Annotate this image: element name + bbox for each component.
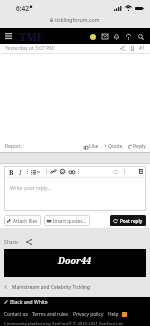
button[interactable]: RSS feed [122,312,127,317]
staticText: Black and White [10,299,48,306]
button[interactable]: I [17,168,24,175]
button[interactable]: Alerts [111,31,122,42]
staticText: I [19,168,22,175]
button[interactable]: Contact us [4,311,28,318]
button[interactable]: Help [108,311,119,318]
button[interactable]: Post reply [110,215,146,226]
staticText: Attach files [13,218,38,224]
staticText: + [104,143,107,150]
button[interactable]: Door44 [4,249,146,277]
staticText: ticklingforum.com [55,16,100,23]
button[interactable]: Your account [87,31,98,42]
staticText: B [9,168,14,175]
button[interactable]: Menu [2,30,14,42]
button[interactable]: + [104,143,123,150]
staticText: Share: [4,239,19,246]
button[interactable]: Reply [128,143,146,150]
button[interactable]: Black and White [0,297,150,307]
staticText: Yesterday at 3:07 PM [5,45,54,52]
staticText: Like [89,143,99,150]
button[interactable]: Toggle BB code [137,168,144,175]
button[interactable]: Mainstream and Celebrity Tickling [12,284,91,291]
staticText: Write your reply... [10,185,52,192]
button[interactable]: Attach files [4,215,41,226]
button[interactable]: Privacy policy [73,311,104,318]
staticText: Door44 [58,254,92,266]
button[interactable]: #1 [139,45,146,52]
button[interactable]: Smilies [59,168,66,175]
staticText: Quote [108,143,123,150]
button[interactable]: Share post [119,45,126,52]
button[interactable]: Help [123,31,134,42]
staticText: 6:42 [16,4,29,13]
staticText: Community platform by XenForo® © 2010-20… [4,321,124,326]
button[interactable]: Share [25,238,33,246]
button[interactable]: Like [84,143,99,150]
button[interactable]: Report [5,143,21,150]
button[interactable]: Search [135,31,146,42]
staticText: Reply [133,143,146,150]
button[interactable]: Insert quotes... [44,215,90,226]
button[interactable]: TMF [19,29,44,44]
button[interactable]: Link [50,168,57,175]
button[interactable]: Undo [112,168,119,175]
button[interactable]: B [8,168,15,175]
button[interactable]: Media [68,168,76,176]
staticText: Insert quotes... [53,218,87,224]
button[interactable]: Lists [31,168,40,176]
button[interactable]: Terms and rules [32,311,69,318]
button[interactable]: Inbox [99,31,110,42]
staticText: Post reply [120,218,143,224]
button[interactable]: Bookmark [129,45,136,52]
